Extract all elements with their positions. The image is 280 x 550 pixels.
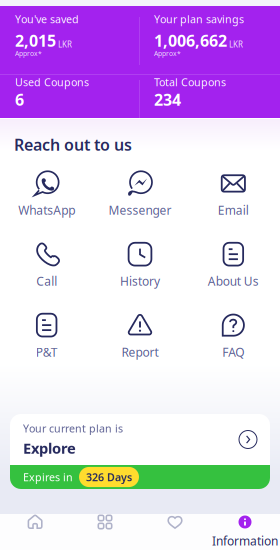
staticText: WhatsApp: [18, 202, 75, 218]
staticText: Report: [121, 344, 158, 360]
staticText: Expires in: [23, 470, 73, 484]
button[interactable]: Your current plan is: [0, 414, 280, 489]
button[interactable]: History: [93, 238, 187, 291]
staticText: FAQ: [222, 344, 244, 360]
button[interactable]: Messenger: [93, 167, 187, 220]
staticText: History: [120, 273, 160, 289]
staticText: Your current plan is: [23, 421, 123, 435]
button[interactable]: Favourites: [140, 514, 210, 550]
staticText: Reach out to us: [14, 134, 132, 155]
button[interactable]: Call: [0, 238, 93, 291]
button[interactable]: Categories: [70, 514, 140, 550]
staticText: Your plan savings: [154, 12, 244, 26]
button[interactable]: Information: [210, 514, 280, 550]
button[interactable]: Home: [0, 514, 70, 550]
button[interactable]: About Us: [187, 238, 280, 291]
staticText: Explore: [23, 438, 76, 458]
staticText: 2,015: [15, 30, 56, 51]
button[interactable]: WhatsApp: [0, 167, 93, 220]
button[interactable]: Email: [187, 167, 280, 220]
staticText: Information: [212, 533, 278, 549]
staticText: LKR: [58, 39, 72, 50]
button[interactable]: P&T: [0, 309, 93, 362]
staticText: Messenger: [108, 202, 171, 218]
button[interactable]: FAQ: [187, 309, 280, 362]
staticText: Approx*: [15, 49, 42, 58]
staticText: 234: [154, 89, 181, 110]
staticText: P&T: [36, 344, 58, 360]
button[interactable]: Report: [93, 309, 187, 362]
staticText: 6: [15, 89, 24, 110]
staticText: Call: [36, 273, 57, 289]
staticText: Total Coupons: [154, 75, 226, 89]
staticText: Used Coupons: [15, 75, 89, 89]
staticText: Email: [218, 202, 249, 218]
staticText: Approx*: [154, 49, 181, 58]
staticText: About Us: [208, 273, 259, 289]
staticText: You've saved: [15, 12, 79, 26]
staticText: 1,006,662: [154, 30, 227, 51]
staticText: 326 Days: [86, 470, 132, 484]
staticText: LKR: [229, 39, 243, 50]
